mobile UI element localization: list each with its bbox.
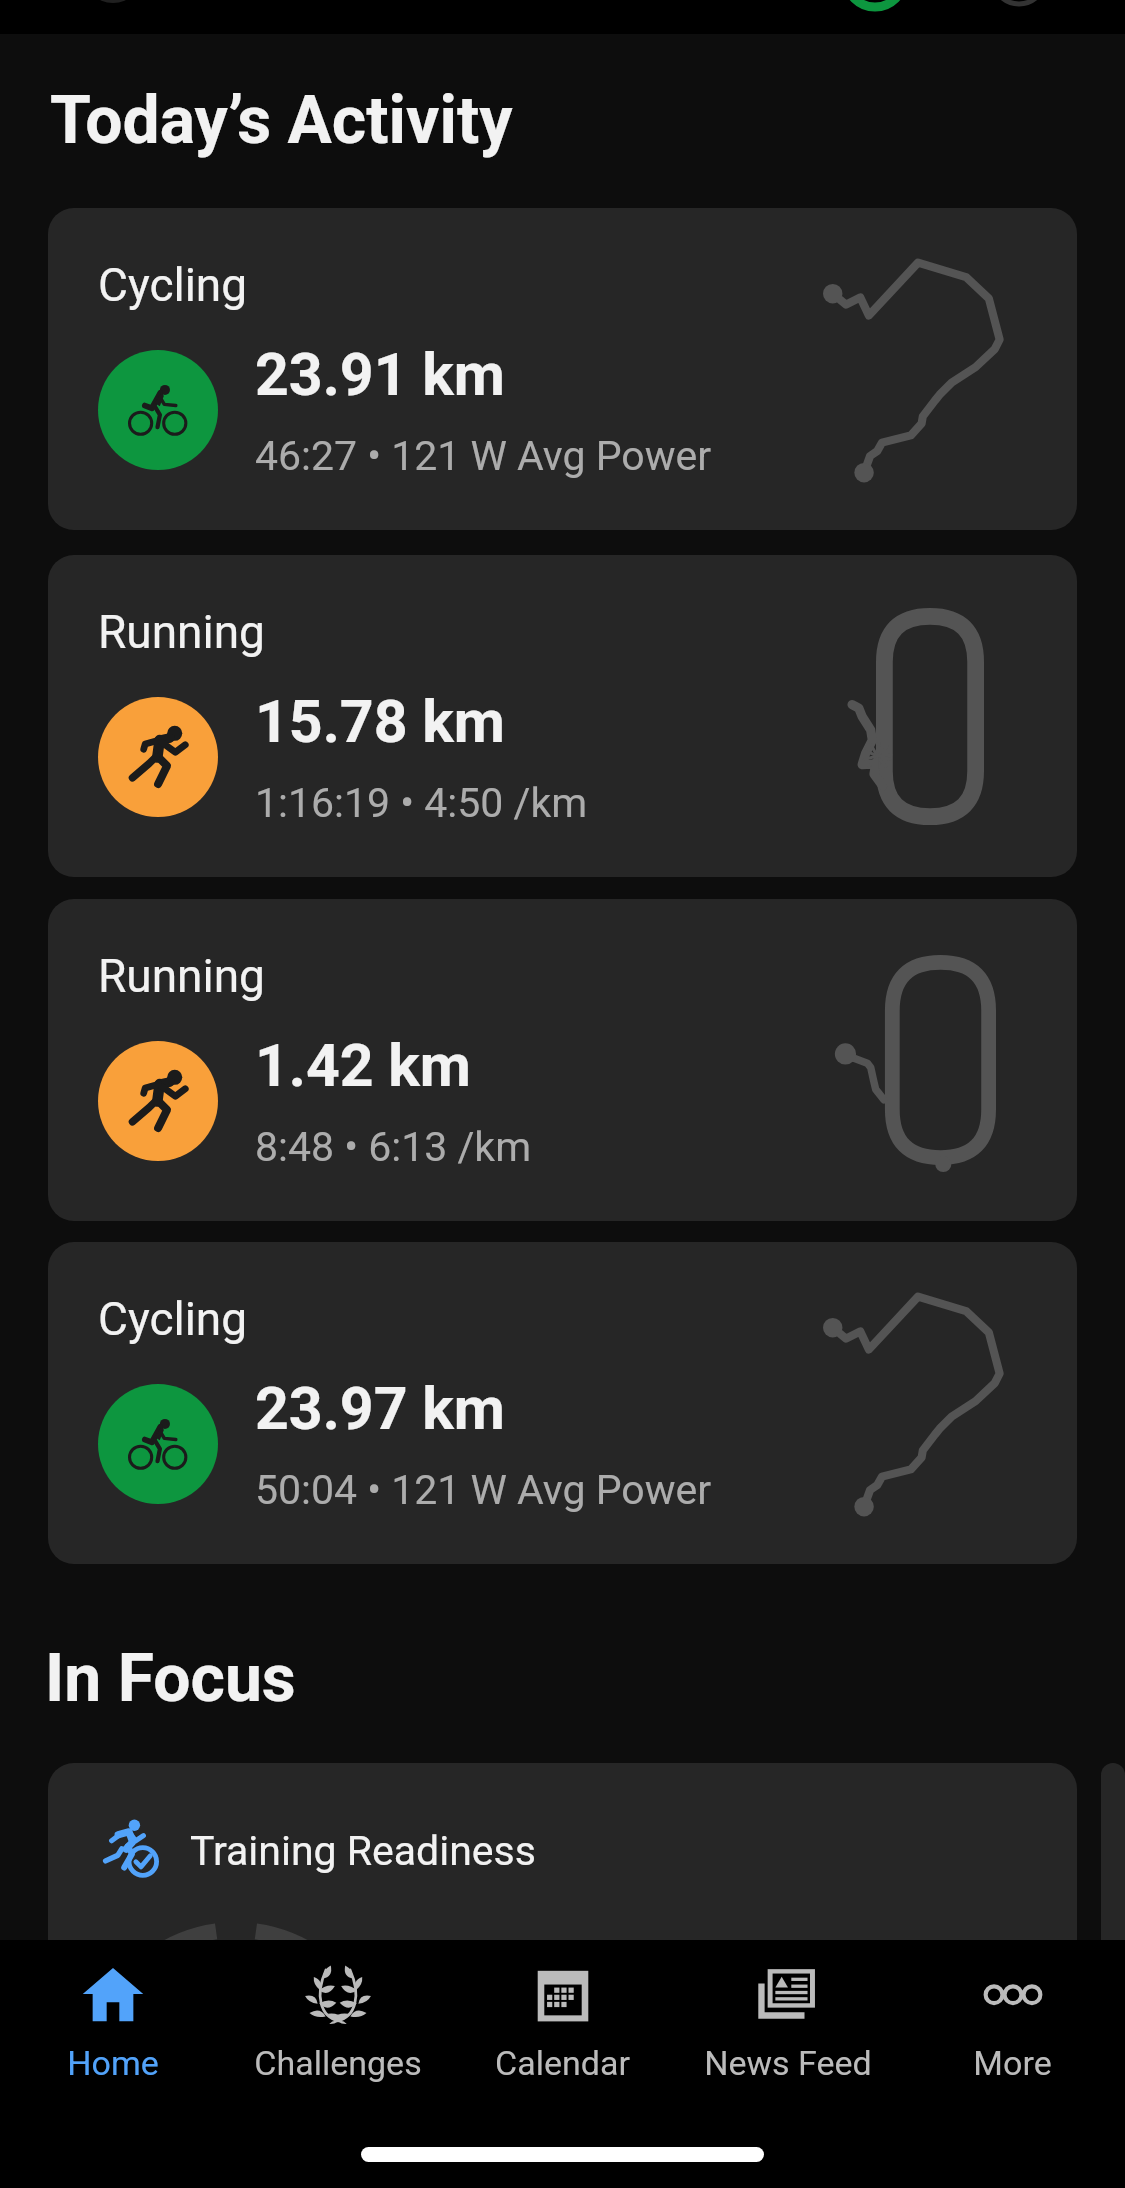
- button[interactable]: Cycling: [48, 1242, 1077, 1564]
- button[interactable]: Cycling: [48, 208, 1077, 530]
- staticText: More: [973, 2043, 1052, 2083]
- staticText: 23.91 km: [255, 340, 505, 409]
- staticText: Running: [98, 949, 265, 1003]
- button[interactable]: Challenges: [225, 1940, 450, 2083]
- other: More: [980, 1962, 1046, 2018]
- other: News Feed: [755, 1962, 821, 2018]
- staticText: Cycling: [98, 1292, 248, 1346]
- staticText: Home: [67, 2043, 159, 2083]
- staticText: 50:04 • 121 W Avg Power: [255, 1466, 712, 1514]
- staticText: Cycling: [98, 258, 248, 312]
- button[interactable]: Home: [0, 1940, 225, 2083]
- other: Challenges: [305, 1962, 371, 2018]
- staticText: 8:48 • 6:13 /km: [255, 1123, 532, 1171]
- staticText: 1.42 km: [255, 1031, 471, 1100]
- staticText: In Focus: [45, 1640, 296, 1717]
- staticText: 23.97 km: [255, 1374, 505, 1443]
- staticText: Training Readiness: [190, 1827, 536, 1875]
- staticText: Today’s Activity: [50, 82, 513, 159]
- staticText: News Feed: [704, 2043, 872, 2083]
- button[interactable]: News Feed: [675, 1940, 900, 2083]
- button[interactable]: Running: [48, 555, 1077, 877]
- staticText: Calendar: [495, 2043, 630, 2083]
- other: Home: [80, 1962, 146, 2018]
- staticText: 46:27 • 121 W Avg Power: [255, 432, 712, 480]
- staticText: 15.78 km: [255, 687, 505, 756]
- button[interactable]: More: [900, 1940, 1125, 2083]
- button[interactable]: Running: [48, 899, 1077, 1221]
- button[interactable]: Training Readiness: [48, 1763, 1077, 2183]
- other: Calendar: [530, 1962, 596, 2018]
- button[interactable]: Calendar: [450, 1940, 675, 2083]
- staticText: 1:16:19 • 4:50 /km: [255, 779, 588, 827]
- staticText: Running: [98, 605, 265, 659]
- staticText: Challenges: [254, 2043, 422, 2083]
